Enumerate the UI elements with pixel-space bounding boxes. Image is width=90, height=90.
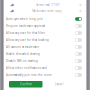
button[interactable]: Auto sync when long join: [4, 15, 86, 22]
staticText: Allow other notifications and: [6, 66, 47, 70]
staticText: Auto sync when long join: [6, 17, 43, 21]
staticText: Enable threaded sharing: [6, 52, 40, 56]
button[interactable]: Confirm: [9, 81, 42, 87]
button[interactable]: Enable threaded sharing: [4, 50, 86, 57]
staticText: Require moderator approval: [6, 24, 45, 28]
staticText: Allow any user for that loading: [6, 38, 49, 42]
button[interactable]: Require moderator approval: [4, 22, 86, 29]
button[interactable]: Allow any user for that filter: [4, 29, 86, 36]
button[interactable]: Allow any user for that loading: [4, 36, 86, 43]
button[interactable]: Cancel: [54, 81, 63, 87]
staticText: Disable WiFi on starting: [6, 59, 38, 63]
button[interactable]: Allow other notifications and: [4, 64, 86, 71]
button[interactable]: All account as moderator: [4, 43, 86, 50]
staticText: Allow any user for that filter: [6, 31, 45, 35]
button[interactable]: Automatically join into the room: [4, 71, 86, 78]
staticText: All account as moderator: [6, 45, 39, 49]
button[interactable]: Disable WiFi on starting: [4, 57, 86, 64]
staticText: Server mail 71991: [36, 3, 61, 7]
button[interactable]: Server mail 71991: [4, 2, 86, 8]
staticText: Confirm: [20, 82, 31, 86]
staticText: Cancel: [54, 82, 63, 86]
staticText: Moderator code copy: [32, 9, 61, 13]
button[interactable]: Moderator code copy: [4, 8, 86, 14]
staticText: Automatically join into the room: [6, 73, 51, 77]
